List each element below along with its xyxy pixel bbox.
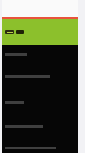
button[interactable]: Menu [16,30,24,34]
button[interactable] [2,51,78,57]
button[interactable] [2,99,78,105]
button[interactable] [2,123,78,129]
button[interactable]: Logo [2,19,78,45]
button[interactable] [2,73,78,79]
button[interactable]: Logo [5,30,14,34]
button[interactable] [2,145,78,150]
